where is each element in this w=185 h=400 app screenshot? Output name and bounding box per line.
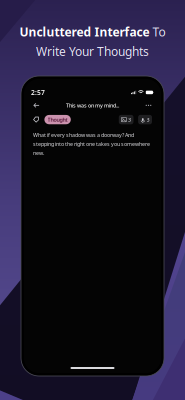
staticText: To	[149, 24, 165, 40]
staticText: 3	[146, 116, 149, 123]
staticText: 3	[128, 116, 131, 123]
button[interactable]: Back	[31, 100, 42, 111]
staticText: 2:57	[31, 88, 45, 97]
staticText: Uncluttered Interface	[19, 24, 149, 40]
staticText: This was on my mind...	[66, 102, 119, 109]
staticText: Thought	[48, 116, 68, 123]
button[interactable]: More options	[143, 100, 154, 111]
staticText: Write Your Thoughts	[36, 43, 149, 59]
staticText: What if every shadow was a doorway? And …	[33, 131, 150, 156]
button[interactable]: Thought	[44, 115, 71, 124]
